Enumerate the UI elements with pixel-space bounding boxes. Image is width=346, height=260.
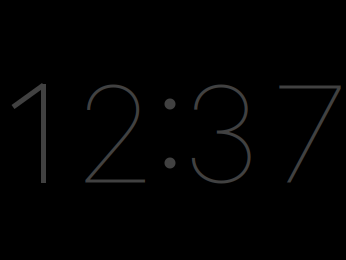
staticText: 7 <box>273 53 346 215</box>
staticText: 2 <box>73 53 156 215</box>
staticText: 3 <box>182 53 260 215</box>
